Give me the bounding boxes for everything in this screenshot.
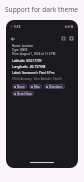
button[interactable]: Map [29,84,42,89]
button[interactable]: Edit [61,36,66,41]
button[interactable]: Directions [44,84,65,89]
button[interactable]: Back [9,35,16,42]
staticText: Type: GNSS [12,48,28,52]
staticText: 100 m Accuracy · 24 m Altitude · 0 km/h [12,77,62,81]
button[interactable]: More options [69,36,74,41]
staticText: Longitude: -86.737698 [12,65,46,69]
staticText: Directions [49,85,63,89]
staticText: Label: Someone's Pixel 6 Pro [12,71,55,75]
staticText: Latitude: 33.617739 [12,59,42,63]
staticText: Street View [17,92,32,96]
button[interactable]: Street View [12,91,34,96]
staticText: Name: Location [12,44,34,48]
button[interactable]: Share [12,84,27,89]
staticText: Share [17,85,25,89]
staticText: Support for dark theme [5,5,79,14]
staticText: Map [34,85,40,89]
staticText: Time: August 1, 2024 at 1:13 PM [12,52,56,56]
staticText: 1:13 [14,25,21,29]
